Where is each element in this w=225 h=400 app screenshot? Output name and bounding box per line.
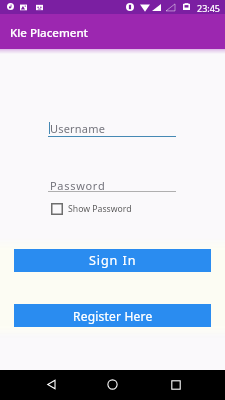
button[interactable]: Register Here bbox=[14, 304, 211, 327]
staticText: Register Here bbox=[73, 308, 153, 324]
staticText: Kle Placement bbox=[10, 25, 89, 41]
staticText: Password bbox=[50, 178, 106, 193]
button[interactable]: Home bbox=[98, 375, 126, 394]
staticText: 23:45 bbox=[197, 2, 221, 14]
button[interactable]: Sign In bbox=[14, 249, 211, 272]
staticText: Username bbox=[50, 121, 106, 136]
button[interactable]: Recent apps bbox=[162, 375, 190, 394]
staticText: Show Password bbox=[68, 203, 132, 215]
button[interactable]: Back bbox=[37, 375, 65, 394]
staticText: Sign In bbox=[89, 252, 137, 269]
button[interactable]: Show Password bbox=[51, 203, 132, 215]
